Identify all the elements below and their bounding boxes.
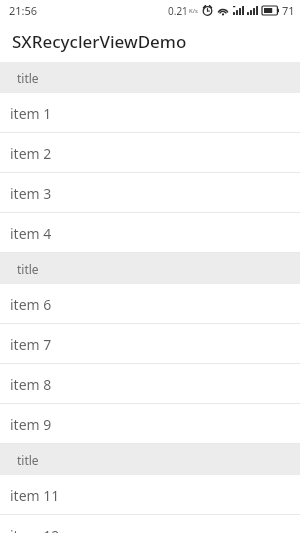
staticText: item 1 [10, 104, 52, 123]
staticText: item 4 [10, 224, 52, 243]
button[interactable]: item 12 [0, 515, 300, 533]
staticText: title [17, 452, 39, 468]
staticText: 0.21 [168, 4, 188, 18]
button[interactable]: title [0, 62, 300, 93]
staticText: item 6 [10, 295, 52, 314]
button[interactable]: item 2 [0, 133, 300, 173]
staticText: item 12 [10, 526, 60, 533]
staticText: item 11 [10, 486, 60, 505]
button[interactable]: item 8 [0, 364, 300, 404]
staticText: item 3 [10, 184, 52, 203]
staticText: item 2 [10, 144, 52, 163]
staticText: title [17, 261, 39, 277]
button[interactable]: title [0, 444, 300, 475]
button[interactable]: item 1 [0, 93, 300, 133]
button[interactable]: item 4 [0, 213, 300, 253]
button[interactable]: item 3 [0, 173, 300, 213]
button[interactable]: item 6 [0, 284, 300, 324]
staticText: title [17, 70, 39, 86]
button[interactable]: title [0, 253, 300, 284]
staticText: 21:56 [9, 3, 38, 18]
staticText: item 8 [10, 375, 52, 394]
button[interactable]: item 11 [0, 475, 300, 515]
staticText: item 9 [10, 415, 52, 434]
button[interactable]: item 9 [0, 404, 300, 444]
button[interactable]: item 7 [0, 324, 300, 364]
staticText: K/s [189, 7, 198, 15]
staticText: 71 [282, 3, 295, 18]
staticText: item 7 [10, 335, 52, 354]
staticText: SXRecyclerViewDemo [12, 30, 187, 53]
